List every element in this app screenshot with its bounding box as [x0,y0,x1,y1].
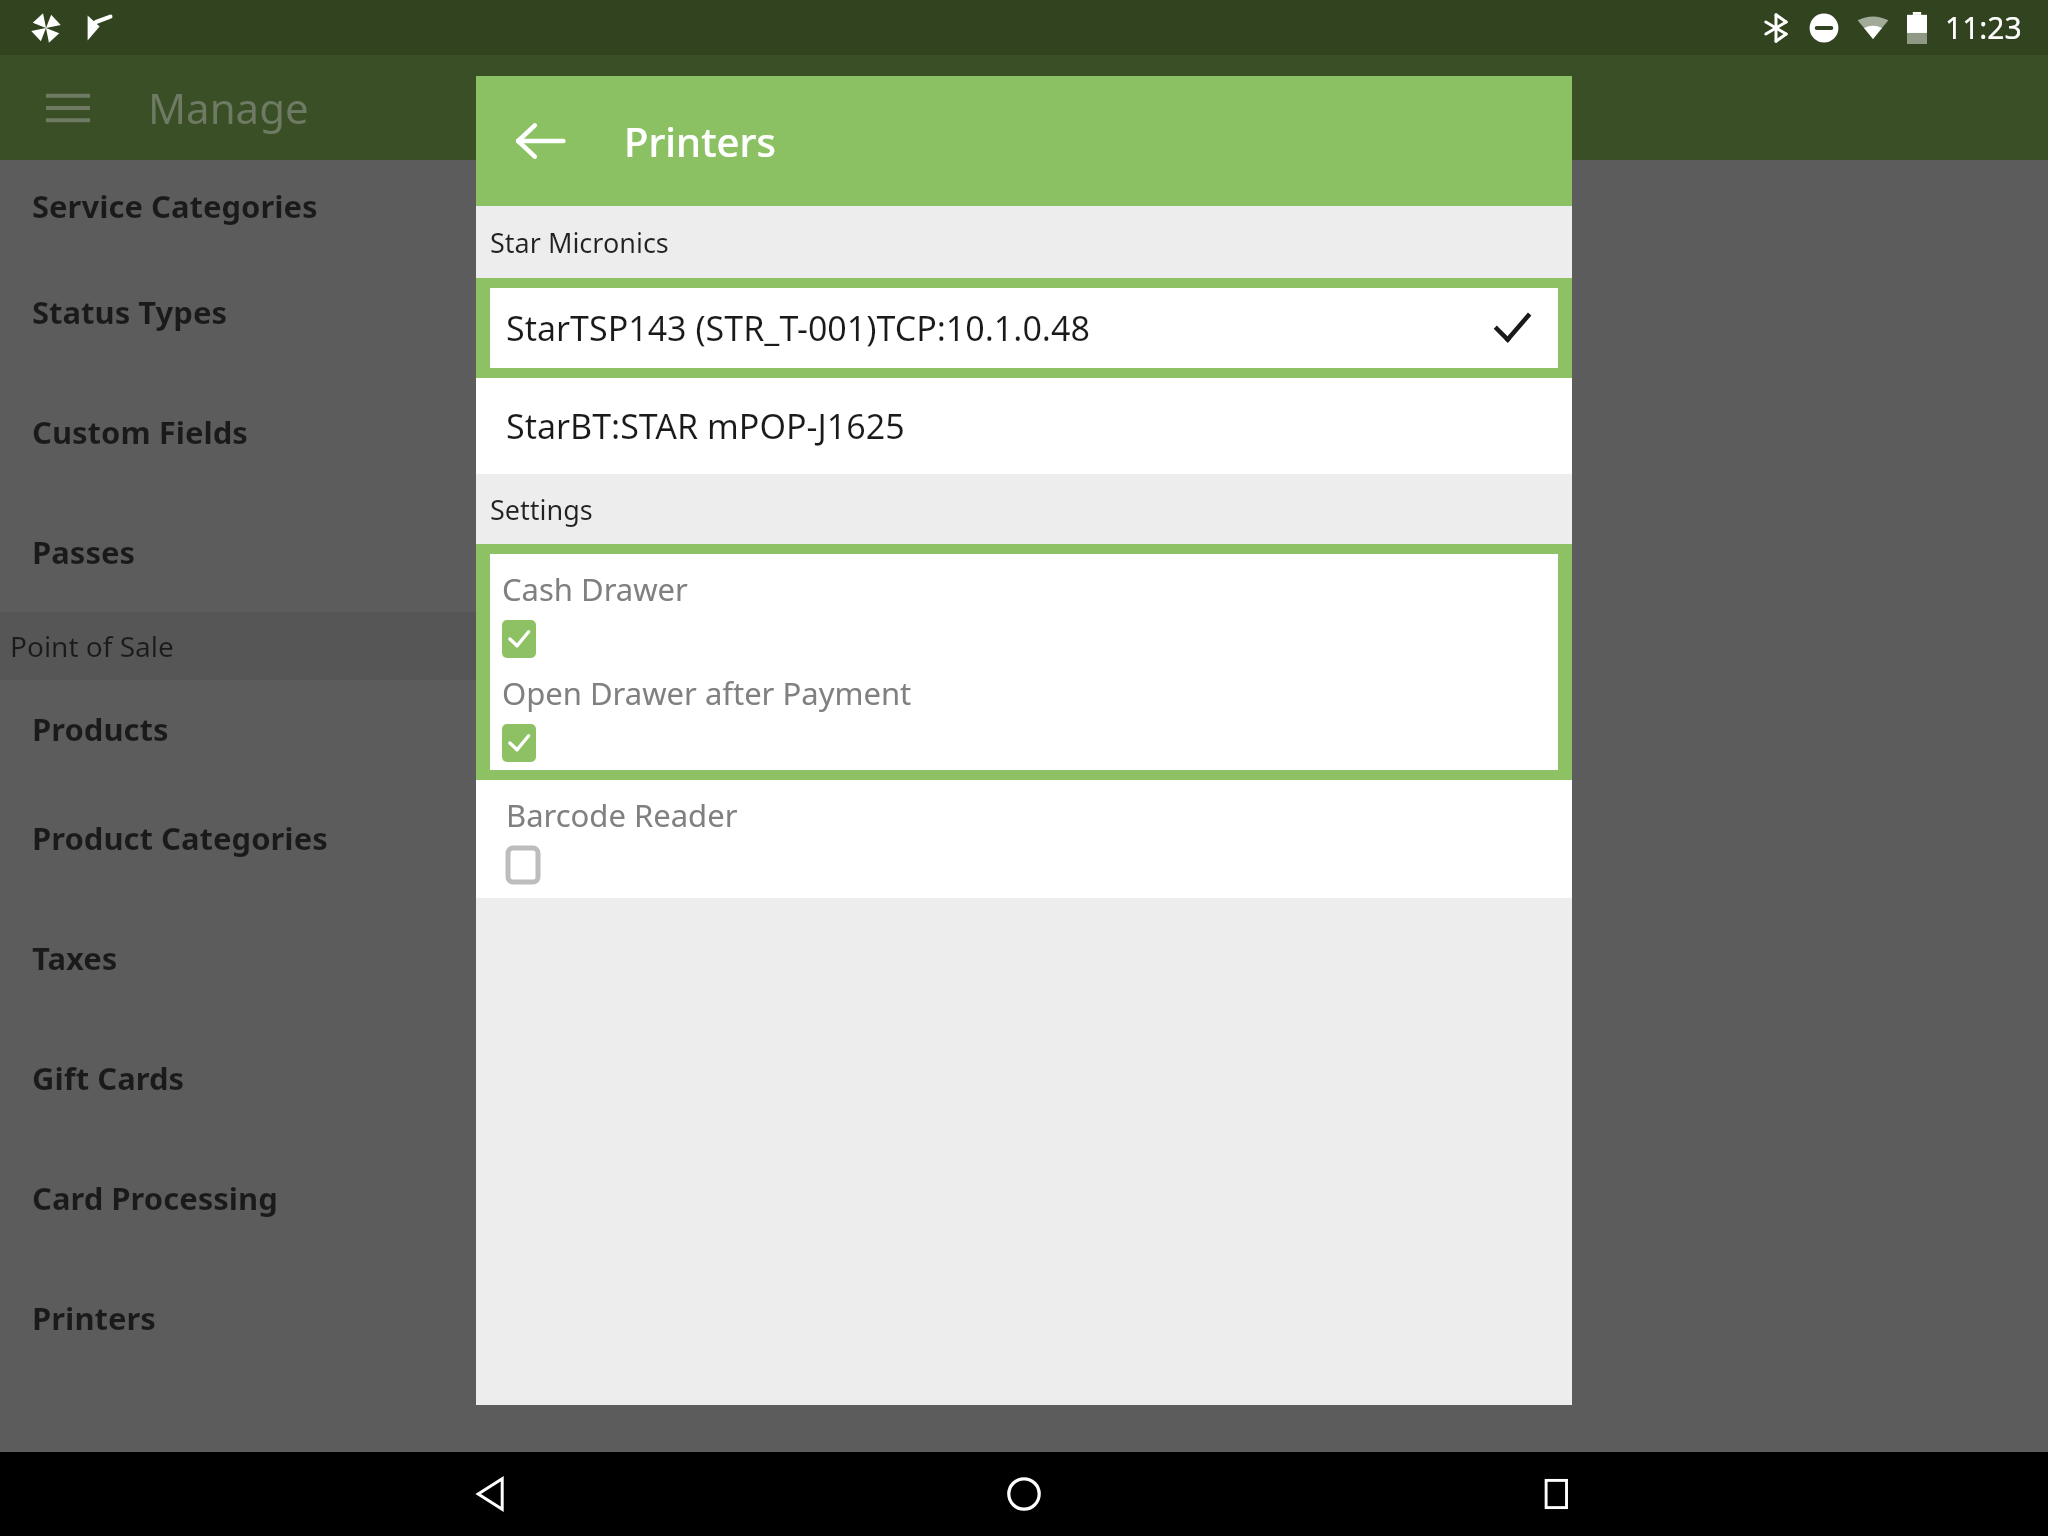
staticText: Star Micronics [490,224,669,261]
staticText: Cash Drawer [502,568,688,610]
staticText: Printers [624,114,776,168]
staticText: Products [32,708,169,750]
staticText: StarTSP143 (STR_T-001)TCP:10.1.0.48 [506,305,1494,351]
staticText: Service Categories [32,185,318,227]
button[interactable]: Service Categories [0,160,672,252]
staticText: Passes [32,531,136,573]
button[interactable]: Products [0,680,672,778]
staticText: Manage [148,79,309,136]
staticText: Custom Fields [32,411,248,453]
button[interactable]: Home [982,1452,1066,1536]
button[interactable]: Open Drawer after Payment [490,658,1558,762]
button[interactable]: Cash Drawer [490,554,1558,658]
staticText: Barcode Reader [506,794,738,836]
button[interactable]: StarBT:STAR mPOP-J1625 [476,378,1572,474]
staticText: Taxes [32,937,118,979]
staticText: 11:23 [1945,7,2022,48]
button[interactable]: Recent apps [1515,1452,1599,1536]
staticText: Gift Cards [32,1057,185,1099]
staticText: StarBT:STAR mPOP-J1625 [506,403,905,449]
button[interactable]: StarTSP143 (STR_T-001)TCP:10.1.0.48 [490,288,1558,368]
button[interactable]: Passes [0,492,672,612]
staticText: Settings [490,491,593,528]
button[interactable]: Product Categories [0,778,672,898]
button[interactable]: Status Types [0,252,672,372]
button[interactable]: Gift Cards [0,1018,672,1138]
button[interactable]: Back [449,1452,533,1536]
button[interactable]: Back [504,105,576,177]
staticText: Status Types [32,291,227,333]
staticText: Printers [32,1297,156,1339]
staticText: Product Categories [32,817,328,859]
staticText: Point of Sale [10,627,174,665]
button[interactable]: Card Processing [0,1138,672,1258]
staticText: Card Processing [32,1177,278,1219]
button[interactable]: Open navigation menu [40,80,96,136]
button[interactable]: Printers [0,1258,672,1378]
button[interactable]: Taxes [0,898,672,1018]
button[interactable]: Barcode Reader [476,780,1572,884]
staticText: Open Drawer after Payment [502,672,912,714]
button[interactable]: Custom Fields [0,372,672,492]
